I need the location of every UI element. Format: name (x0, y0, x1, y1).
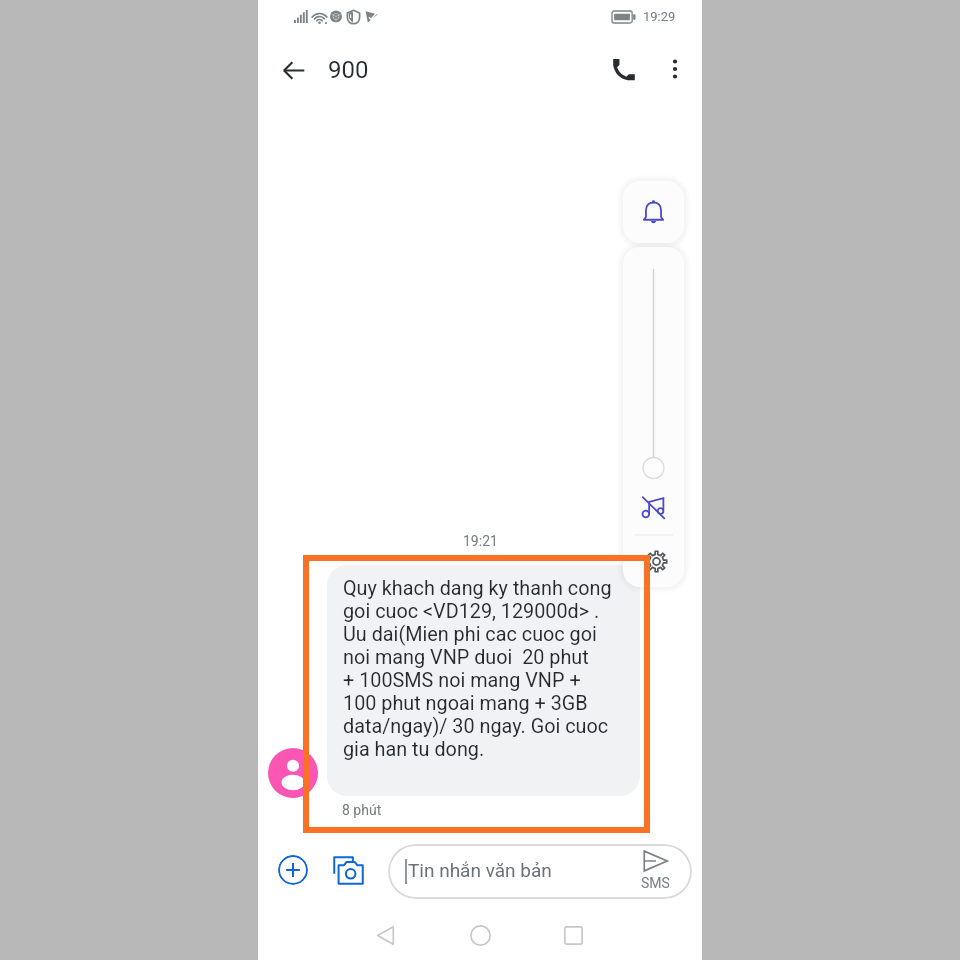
button[interactable]: Back (357, 907, 413, 960)
staticText: Tin nhắn văn bản (408, 859, 552, 881)
button[interactable]: Camera (332, 854, 365, 887)
staticText: 19:29 (643, 9, 676, 24)
staticText: 8 phút (342, 802, 382, 818)
button[interactable]: Contact avatar (268, 748, 318, 798)
button[interactable]: Quy khach dang ky thanh cong goi cuoc <V… (327, 565, 640, 796)
button[interactable]: More options (653, 47, 697, 91)
button[interactable]: Back (271, 48, 315, 92)
button[interactable]: Add attachment (278, 855, 308, 885)
button[interactable]: Ringer mode (623, 181, 684, 243)
staticText: 19:21 (463, 533, 498, 549)
button[interactable]: Call (602, 47, 646, 91)
button[interactable]: Mute (623, 487, 684, 527)
button[interactable]: Send SMS (631, 844, 679, 899)
button[interactable]: Sound settings (623, 541, 684, 581)
button[interactable]: Recents (545, 907, 601, 960)
staticText: Quy khach dang ky thanh cong goi cuoc <V… (343, 577, 612, 761)
button[interactable]: Tin nhắn văn bản (388, 844, 692, 899)
button[interactable]: Home (452, 907, 508, 960)
staticText: 900 (328, 56, 369, 84)
staticText: SMS (641, 875, 670, 891)
